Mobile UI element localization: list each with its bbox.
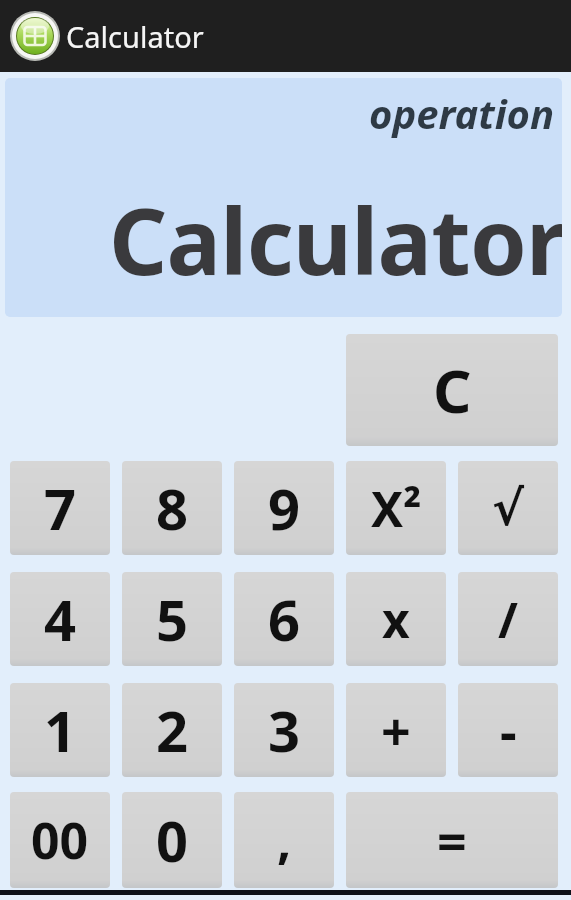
button[interactable]: 5	[122, 572, 222, 666]
staticText: -	[500, 695, 517, 766]
staticText: 3	[268, 692, 301, 768]
button[interactable]: =	[346, 792, 558, 888]
staticText: C	[433, 349, 472, 431]
staticText: 6	[268, 581, 301, 657]
button[interactable]: 9	[234, 461, 334, 555]
button[interactable]: 1	[10, 683, 110, 777]
staticText: +	[381, 695, 411, 766]
staticText: 0	[156, 802, 189, 878]
staticText: 8	[156, 470, 189, 546]
staticText: 5	[156, 581, 189, 657]
staticText: √	[492, 480, 525, 536]
button[interactable]: -	[458, 683, 558, 777]
button[interactable]: 00	[10, 792, 110, 888]
staticText: operation	[369, 86, 555, 140]
button[interactable]: 8	[122, 461, 222, 555]
button[interactable]: ,	[234, 792, 334, 888]
button[interactable]: X²	[346, 461, 446, 555]
button[interactable]: C	[346, 334, 558, 446]
button[interactable]: 4	[10, 572, 110, 666]
button[interactable]: 7	[10, 461, 110, 555]
button[interactable]: 6	[234, 572, 334, 666]
staticText: X²	[371, 476, 422, 541]
staticText: 7	[44, 470, 77, 546]
button[interactable]: 2	[122, 683, 222, 777]
button[interactable]: +	[346, 683, 446, 777]
staticText: x	[382, 587, 410, 652]
button[interactable]: /	[458, 572, 558, 666]
staticText: 2	[156, 692, 189, 768]
button[interactable]: 0	[122, 792, 222, 888]
staticText: 9	[268, 470, 301, 546]
staticText: 1	[44, 692, 77, 768]
staticText: 4	[44, 581, 77, 657]
staticText: Calculator	[66, 17, 204, 56]
button[interactable]: 3	[234, 683, 334, 777]
staticText: 00	[31, 806, 89, 874]
staticText: /	[498, 587, 518, 652]
staticText: =	[437, 805, 467, 876]
button[interactable]: x	[346, 572, 446, 666]
staticText: ,	[277, 806, 292, 874]
button[interactable]: √	[458, 461, 558, 555]
staticText: Calculator	[109, 178, 562, 302]
